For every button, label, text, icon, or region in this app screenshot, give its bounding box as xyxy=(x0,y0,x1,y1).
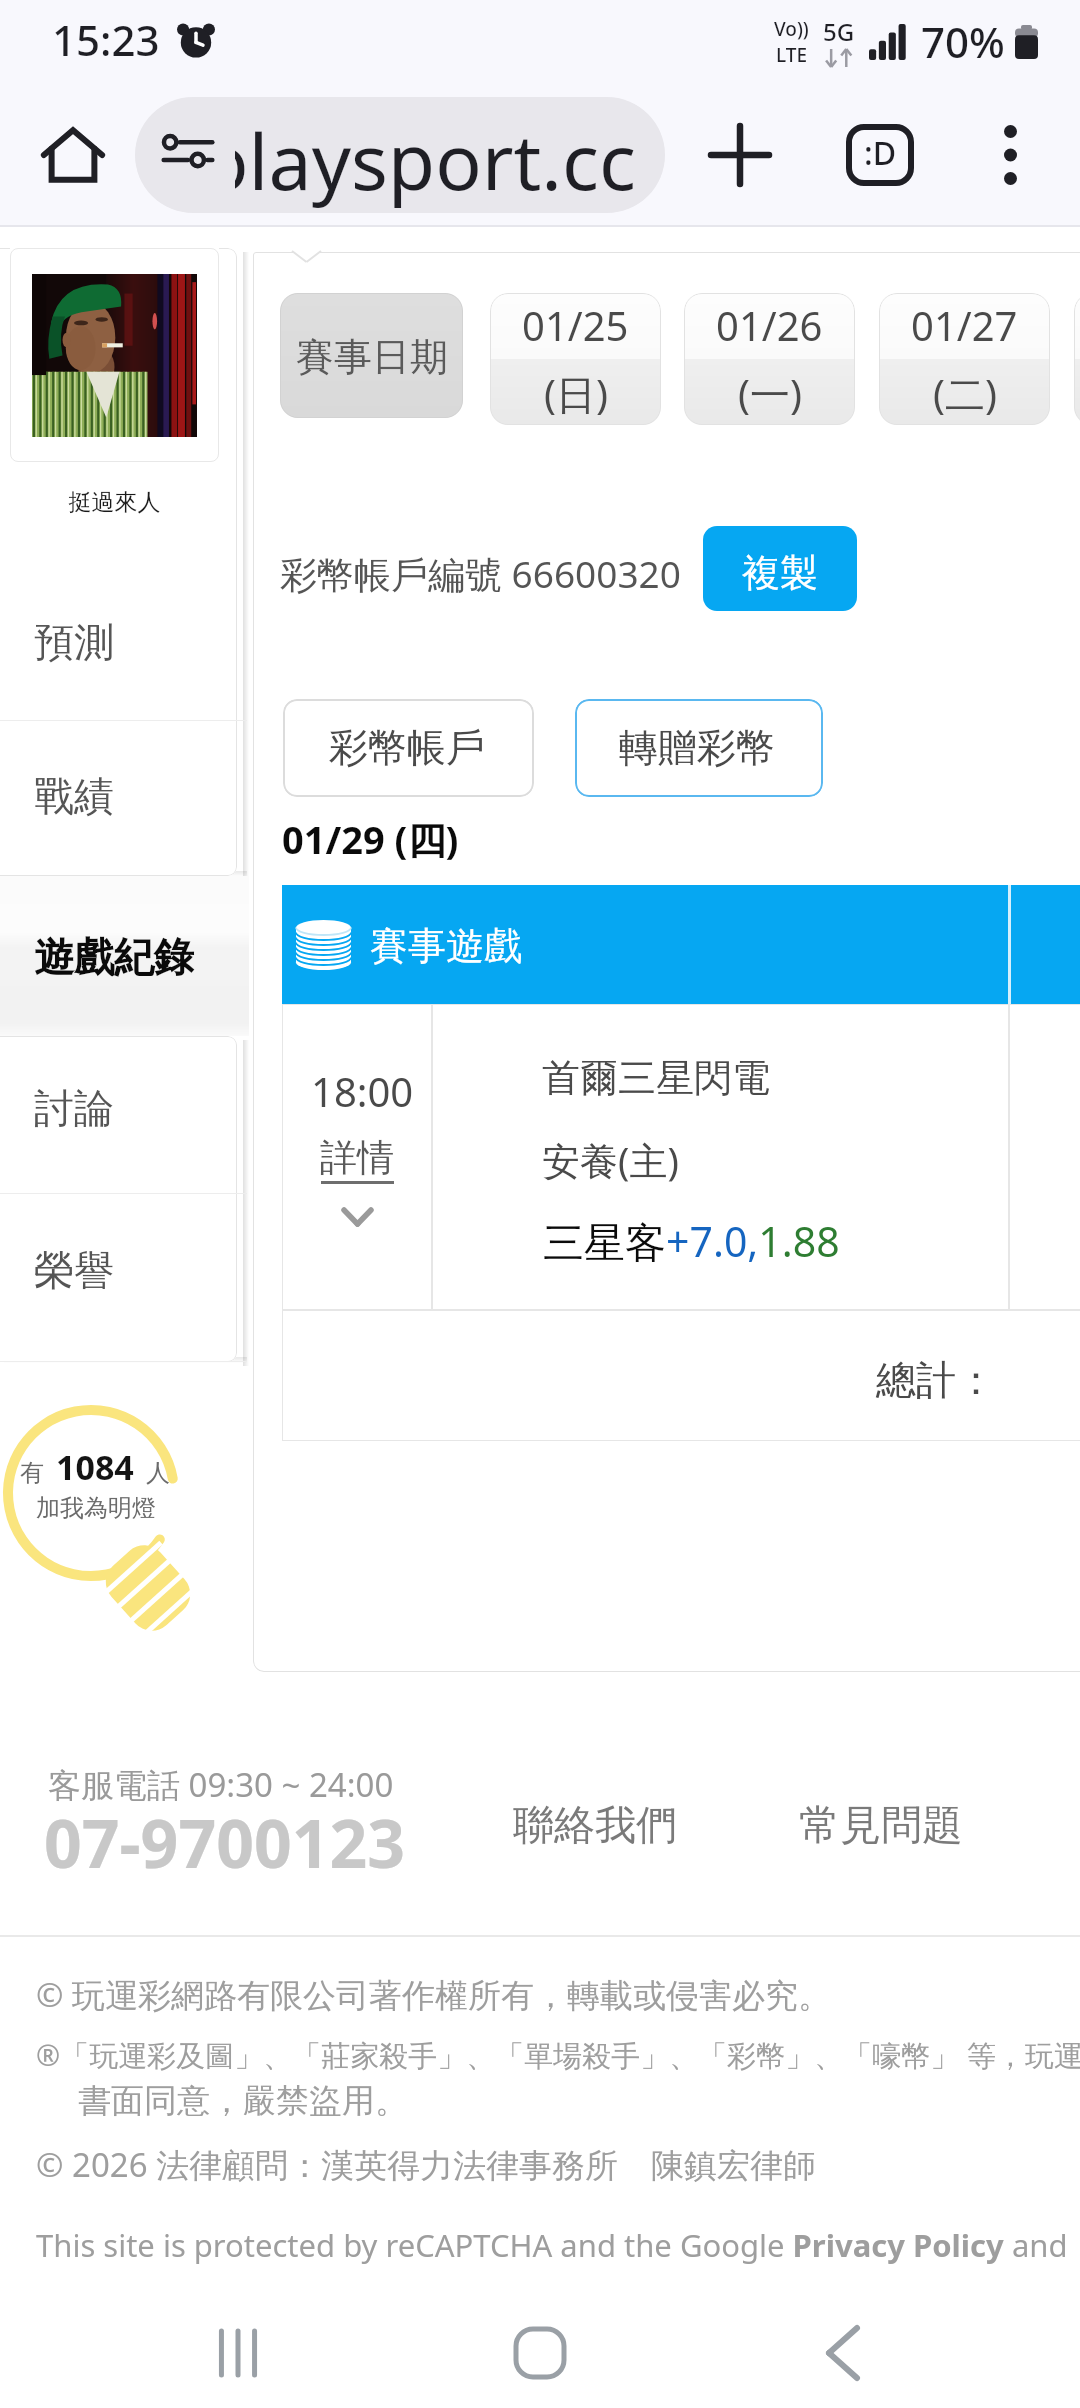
staticText: 三星客+7.0,1.88 xyxy=(543,1213,840,1269)
staticText: 遊戲紀錄 xyxy=(34,932,194,982)
staticText: 人 xyxy=(146,1458,170,1488)
staticText: 詳情 xyxy=(320,1134,394,1181)
staticText: 18:00 xyxy=(311,1064,414,1118)
staticText: © 玩運彩網路有限公司著作權所有，轉載或侵害必究。 xyxy=(36,1972,832,2017)
button[interactable]: 聯絡我們 xyxy=(497,1788,693,1864)
staticText: 07-9700123 xyxy=(44,1797,405,1887)
staticText: 賽事遊戲 xyxy=(370,922,522,970)
button[interactable]: 01/25 xyxy=(490,293,661,425)
staticText: (日) xyxy=(544,366,608,421)
button[interactable]: 01/28 xyxy=(1074,293,1080,425)
staticText: 複製 xyxy=(742,549,818,597)
button[interactable]: 轉贈彩幣 xyxy=(575,699,823,797)
staticText: 書面同意，嚴禁盜用。 xyxy=(78,2080,408,2122)
button[interactable]: 榮譽 xyxy=(0,1194,247,1346)
staticText: 轉贈彩幣 xyxy=(619,723,775,772)
button[interactable]: 複製 xyxy=(703,526,857,611)
staticText: 1084 xyxy=(56,1444,134,1490)
button[interactable]: 賽事日期 xyxy=(280,293,463,418)
staticText: (二) xyxy=(933,366,997,421)
staticText: 首爾三星閃電 xyxy=(542,1054,770,1102)
staticText: 預測 xyxy=(34,617,114,667)
button[interactable]: 討論 xyxy=(0,1032,247,1184)
button[interactable]: 戰績 xyxy=(0,720,247,872)
button[interactable]: More options xyxy=(960,105,1060,205)
button[interactable]: New tab xyxy=(690,105,790,205)
staticText: 常見問題 xyxy=(799,1800,963,1852)
button[interactable]: 01/27 xyxy=(879,293,1050,425)
staticText: 加我為明燈 xyxy=(36,1493,156,1523)
staticText: 客服電話 09:30 ~ 24:00 xyxy=(48,1762,394,1807)
staticText: 5G xyxy=(823,15,855,48)
staticText: 聯絡我們 xyxy=(513,1800,677,1852)
staticText: olaysport.cc xyxy=(235,108,636,213)
staticText: ®「玩運彩及圖」、「莊家殺手」、「單場殺手」、「彩幣」、「嚎幣」 等，玩運 xyxy=(36,2035,1080,2075)
staticText: 01/27 xyxy=(911,298,1018,352)
staticText: :D xyxy=(864,131,897,175)
staticText: 總計： xyxy=(876,1355,996,1405)
staticText: © 2026 法律顧問：漢英得力法律事務所 陳鎮宏律師 xyxy=(36,2142,817,2187)
staticText: LTE xyxy=(776,42,808,68)
button[interactable]: Switch tabs xyxy=(830,105,930,205)
staticText: 15:23 xyxy=(52,11,160,68)
button[interactable]: Recent apps xyxy=(173,2298,303,2408)
button[interactable]: Search or type web address xyxy=(135,97,665,213)
button[interactable]: 彩幣帳戶 xyxy=(283,699,534,797)
staticText: (一) xyxy=(738,366,802,421)
staticText: 彩幣帳戶編號 66600320 xyxy=(280,548,681,599)
button[interactable]: 詳情 xyxy=(320,1134,394,1184)
staticText: 有 xyxy=(20,1458,44,1488)
staticText: 01/29 (四) xyxy=(282,813,459,865)
staticText: 討論 xyxy=(34,1083,114,1133)
staticText: 挺過來人 xyxy=(0,488,229,517)
staticText: 70% xyxy=(921,13,1005,70)
staticText: 01/26 xyxy=(716,298,823,352)
button[interactable]: 遊戲紀錄 xyxy=(0,881,247,1033)
staticText: This site is protected by reCAPTCHA and … xyxy=(36,2224,1068,2266)
button[interactable]: 預測 xyxy=(0,566,247,718)
button[interactable]: 01/26 xyxy=(684,293,855,425)
button[interactable]: Home xyxy=(30,112,116,198)
staticText: 榮譽 xyxy=(34,1245,114,1295)
button[interactable]: Back xyxy=(778,2298,908,2408)
staticText: 戰績 xyxy=(34,771,114,821)
staticText: 01/25 xyxy=(522,298,629,352)
button[interactable]: 常見問題 xyxy=(783,1788,979,1864)
staticText: 安養(主) xyxy=(542,1134,679,1186)
button[interactable]: Home xyxy=(475,2298,605,2408)
staticText: Vo)) xyxy=(774,16,809,42)
staticText: 彩幣帳戶 xyxy=(329,723,485,772)
staticText: 賽事日期 xyxy=(296,333,448,381)
